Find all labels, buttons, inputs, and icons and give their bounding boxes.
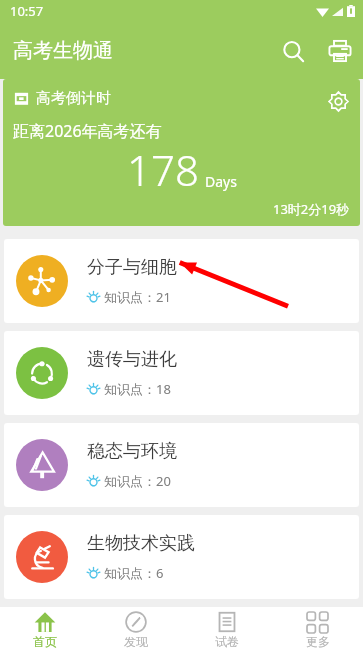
- staticText: 试卷: [215, 634, 239, 649]
- button[interactable]: 遗传与进化: [4, 331, 359, 415]
- button[interactable]: Search: [269, 27, 317, 75]
- staticText: 高考生物通: [13, 38, 113, 63]
- staticText: 知识点：20: [104, 472, 171, 490]
- button[interactable]: 稳态与环境: [4, 423, 359, 507]
- staticText: 知识点：6: [104, 564, 164, 582]
- staticText: 稳态与环境: [87, 440, 177, 463]
- staticText: 178: [127, 141, 199, 198]
- staticText: 13时2分19秒: [273, 200, 350, 218]
- staticText: 知识点：21: [104, 288, 171, 306]
- staticText: 知识点：18: [104, 380, 171, 398]
- button[interactable]: 发现: [90, 607, 181, 653]
- button[interactable]: 分子与细胞: [4, 239, 359, 323]
- staticText: 生物技术实践: [87, 532, 195, 555]
- staticText: 遗传与进化: [87, 348, 177, 371]
- staticText: 高考倒计时: [36, 89, 111, 108]
- staticText: 首页: [33, 634, 57, 649]
- staticText: 更多: [306, 634, 330, 649]
- staticText: 距离2026年高考还有: [13, 120, 162, 142]
- button[interactable]: 试卷: [181, 607, 272, 653]
- button[interactable]: Settings: [316, 79, 360, 123]
- button[interactable]: 生物技术实践: [4, 515, 359, 599]
- staticText: 10:57: [10, 2, 44, 20]
- button[interactable]: 高考倒计时: [3, 79, 360, 226]
- button[interactable]: 首页: [0, 607, 90, 653]
- staticText: 分子与细胞: [87, 256, 177, 279]
- staticText: 发现: [124, 634, 148, 649]
- button[interactable]: Print: [317, 28, 363, 74]
- button[interactable]: 更多: [272, 607, 363, 653]
- staticText: Days: [205, 172, 237, 191]
